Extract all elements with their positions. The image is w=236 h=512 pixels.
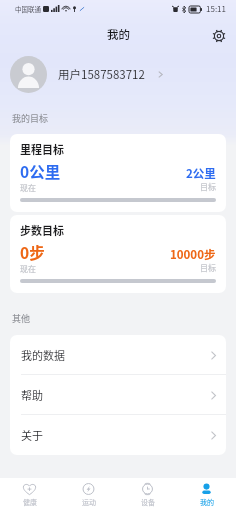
staticText: 我的 xyxy=(107,26,130,43)
staticText: 健康 xyxy=(23,497,37,507)
staticText: 用户1587583712 xyxy=(58,66,145,83)
staticText: 里程目标 xyxy=(20,141,64,157)
button[interactable]: 关于 xyxy=(10,415,226,455)
button[interactable]: 用户1587583712 xyxy=(0,54,236,95)
staticText: 中国联通 xyxy=(15,4,41,13)
staticText: 0公里 xyxy=(20,160,61,182)
button[interactable]: 健康 xyxy=(0,478,59,512)
button[interactable]: 帮助 xyxy=(10,375,226,415)
button[interactable]: 设备 xyxy=(118,478,177,512)
staticText: 2公里 xyxy=(186,165,216,182)
staticText: 15:11 xyxy=(206,3,226,15)
staticText: 运动 xyxy=(82,497,96,507)
staticText: 目标 xyxy=(200,181,216,193)
staticText: 帮助 xyxy=(21,387,43,403)
staticText: 现在 xyxy=(20,263,36,275)
staticText: 0步 xyxy=(20,241,45,263)
staticText: 步数目标 xyxy=(20,222,64,238)
staticText: 10000步 xyxy=(170,246,216,263)
staticText: 关于 xyxy=(21,427,43,443)
button[interactable]: 运动 xyxy=(59,478,118,512)
staticText: 我的数据 xyxy=(21,347,65,363)
staticText: 现在 xyxy=(20,182,36,194)
button[interactable]: 我的数据 xyxy=(10,335,226,375)
staticText: 目标 xyxy=(200,262,216,274)
button[interactable]: 我的 xyxy=(177,478,236,512)
button[interactable]: 步数目标 xyxy=(10,215,226,293)
button[interactable]: 里程目标 xyxy=(10,134,226,212)
staticText: 我的 xyxy=(200,497,214,507)
staticText: 我的目标 xyxy=(12,112,49,125)
staticText: 设备 xyxy=(141,497,155,507)
staticText: 其他 xyxy=(12,312,31,325)
button[interactable]: Settings xyxy=(208,25,230,47)
